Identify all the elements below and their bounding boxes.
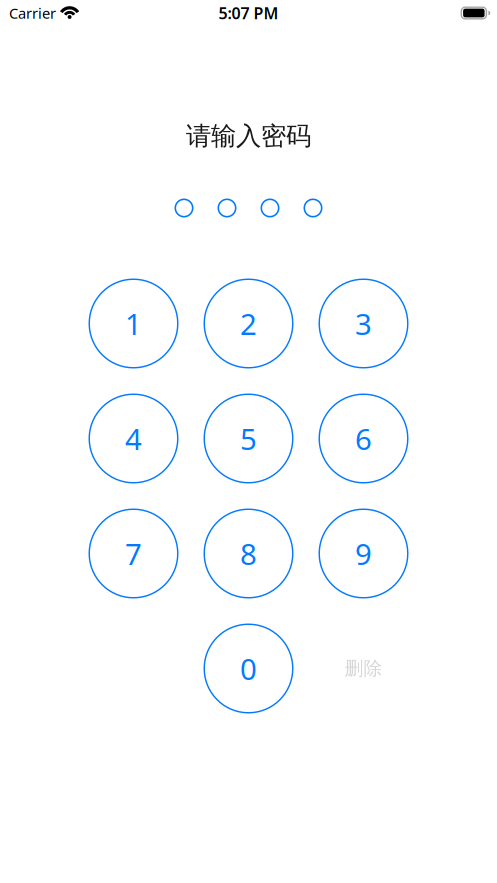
button[interactable]: 1 bbox=[88, 278, 178, 368]
button[interactable]: 6 bbox=[318, 393, 408, 483]
staticText: 5 bbox=[240, 419, 257, 458]
staticText: 4 bbox=[125, 419, 142, 458]
staticText: 0 bbox=[240, 649, 257, 688]
staticText: 删除 bbox=[344, 657, 382, 680]
staticText: 1 bbox=[125, 304, 142, 343]
button[interactable]: 8 bbox=[203, 508, 293, 598]
button[interactable]: 3 bbox=[318, 278, 408, 368]
button[interactable]: 2 bbox=[203, 278, 293, 368]
button[interactable]: 0 bbox=[203, 623, 293, 713]
button[interactable]: 5 bbox=[203, 393, 293, 483]
staticText: 2 bbox=[240, 304, 257, 343]
staticText: 3 bbox=[355, 304, 372, 343]
staticText: 6 bbox=[355, 419, 372, 458]
button[interactable]: 删除 bbox=[318, 623, 408, 713]
button[interactable]: 7 bbox=[88, 508, 178, 598]
staticText: Carrier bbox=[9, 3, 56, 23]
button[interactable]: 4 bbox=[88, 393, 178, 483]
staticText: 请输入密码 bbox=[186, 120, 311, 151]
staticText: 8 bbox=[240, 534, 257, 573]
staticText: 9 bbox=[355, 534, 372, 573]
button[interactable]: 9 bbox=[318, 508, 408, 598]
staticText: 7 bbox=[125, 534, 142, 573]
staticText: 5:07 PM bbox=[218, 2, 278, 24]
